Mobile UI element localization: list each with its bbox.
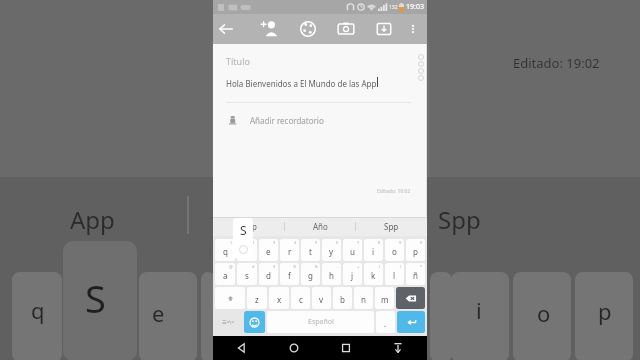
button[interactable]: m bbox=[375, 287, 394, 309]
button[interactable]: 4 bbox=[280, 239, 299, 261]
staticText: - bbox=[337, 264, 339, 269]
button[interactable]: Delete bbox=[396, 287, 425, 309]
staticText: 6 bbox=[336, 240, 339, 245]
button[interactable]: Español bbox=[267, 311, 374, 333]
button[interactable]: Back bbox=[213, 14, 239, 44]
button[interactable]: 0 bbox=[406, 239, 425, 261]
button[interactable]: ( bbox=[364, 263, 383, 285]
staticText: Año bbox=[313, 221, 328, 232]
staticText: Editado: 19:02 bbox=[513, 54, 600, 72]
staticText: 132 bbox=[389, 4, 398, 11]
button[interactable]: Enter bbox=[397, 311, 425, 333]
button[interactable]: Spp bbox=[356, 217, 427, 236]
staticText: & bbox=[315, 264, 318, 269]
button[interactable]: 1 bbox=[215, 239, 235, 261]
staticText: Hola Bienvenidos a El Mundo de las App bbox=[226, 78, 377, 89]
staticText: k bbox=[371, 270, 376, 281]
staticText: j bbox=[351, 270, 354, 281]
button[interactable]: x bbox=[269, 287, 289, 309]
button[interactable]: 6 bbox=[322, 239, 341, 261]
button[interactable]: - bbox=[322, 263, 341, 285]
staticText: 2 bbox=[252, 240, 255, 245]
staticText: g bbox=[308, 270, 313, 281]
button[interactable]: c bbox=[291, 287, 310, 309]
button[interactable]: 3 bbox=[259, 239, 278, 261]
staticText: . bbox=[384, 318, 387, 329]
staticText: z bbox=[255, 294, 259, 305]
staticText: Editado: 19:02 bbox=[377, 188, 411, 195]
staticText: l bbox=[393, 270, 396, 281]
staticText: y bbox=[329, 246, 334, 257]
staticText: d bbox=[266, 270, 271, 281]
staticText: @ bbox=[229, 264, 233, 269]
button[interactable]: Back bbox=[229, 336, 255, 360]
staticText: w bbox=[244, 246, 251, 257]
staticText: ☰=\< bbox=[222, 319, 235, 326]
staticText: * bbox=[420, 264, 423, 269]
button[interactable]: + bbox=[343, 263, 362, 285]
staticText: i bbox=[372, 246, 375, 257]
button[interactable]: Symbols bbox=[215, 311, 242, 333]
staticText: Español bbox=[308, 317, 334, 327]
staticText: 7 bbox=[357, 240, 360, 245]
staticText: Título bbox=[226, 55, 250, 67]
button[interactable]: Hide keyboard bbox=[385, 336, 411, 360]
staticText: 4 bbox=[294, 240, 297, 245]
button[interactable]: n bbox=[354, 287, 373, 309]
staticText: v bbox=[319, 294, 324, 305]
button[interactable]: * bbox=[406, 263, 425, 285]
staticText: o bbox=[537, 298, 551, 328]
staticText: x bbox=[277, 294, 282, 305]
staticText: s bbox=[245, 270, 249, 281]
button[interactable]: 5 bbox=[301, 239, 320, 261]
staticText: e bbox=[152, 298, 165, 328]
staticText: a bbox=[223, 270, 228, 281]
staticText: p bbox=[598, 296, 612, 326]
button[interactable]: Home bbox=[281, 336, 307, 360]
button[interactable]: Recents bbox=[333, 336, 359, 360]
button[interactable]: App bbox=[213, 217, 285, 236]
staticText: c bbox=[299, 294, 303, 305]
button[interactable]: . bbox=[376, 311, 395, 333]
button[interactable]: v bbox=[312, 287, 331, 309]
button[interactable]: Archive bbox=[370, 14, 398, 44]
staticText: e bbox=[266, 246, 271, 257]
staticText: n bbox=[361, 294, 366, 305]
button[interactable]: 8 bbox=[364, 239, 383, 261]
staticText: Añadir recordatorio bbox=[250, 115, 324, 126]
button[interactable]: 9 bbox=[385, 239, 404, 261]
staticText: + bbox=[357, 264, 360, 269]
button[interactable]: Camera bbox=[332, 14, 360, 44]
staticText: r bbox=[288, 246, 292, 257]
button[interactable]: 7 bbox=[343, 239, 362, 261]
button[interactable]: Colour palette bbox=[294, 14, 322, 44]
button[interactable]: Shift bbox=[215, 287, 245, 309]
staticText: ñ bbox=[413, 270, 418, 281]
button[interactable]: % bbox=[280, 263, 299, 285]
button[interactable]: Emoji bbox=[244, 311, 265, 333]
button[interactable]: b bbox=[333, 287, 352, 309]
staticText: Spp bbox=[438, 203, 481, 236]
staticText: q bbox=[223, 246, 228, 257]
button[interactable]: 2 bbox=[237, 239, 257, 261]
button[interactable]: @ bbox=[215, 263, 235, 285]
staticText: i bbox=[476, 295, 482, 325]
button[interactable]: & bbox=[301, 263, 320, 285]
button[interactable]: Año bbox=[285, 217, 356, 236]
button[interactable]: Add person bbox=[254, 14, 284, 44]
button[interactable]: z bbox=[247, 287, 267, 309]
staticText: b bbox=[340, 294, 345, 305]
button[interactable]: More options bbox=[402, 14, 424, 44]
button[interactable]: ) bbox=[385, 263, 404, 285]
staticText: # bbox=[252, 264, 255, 269]
staticText: 0 bbox=[420, 240, 423, 245]
staticText: 19:03 bbox=[406, 2, 424, 12]
button[interactable]: $ bbox=[259, 263, 278, 285]
button[interactable]: # bbox=[237, 263, 257, 285]
staticText: 9 bbox=[399, 240, 402, 245]
staticText: App bbox=[242, 221, 257, 232]
button[interactable]: Añadir recordatorio bbox=[226, 113, 324, 127]
staticText: m bbox=[381, 294, 389, 305]
staticText: S bbox=[85, 272, 106, 324]
staticText: $ bbox=[273, 264, 276, 269]
